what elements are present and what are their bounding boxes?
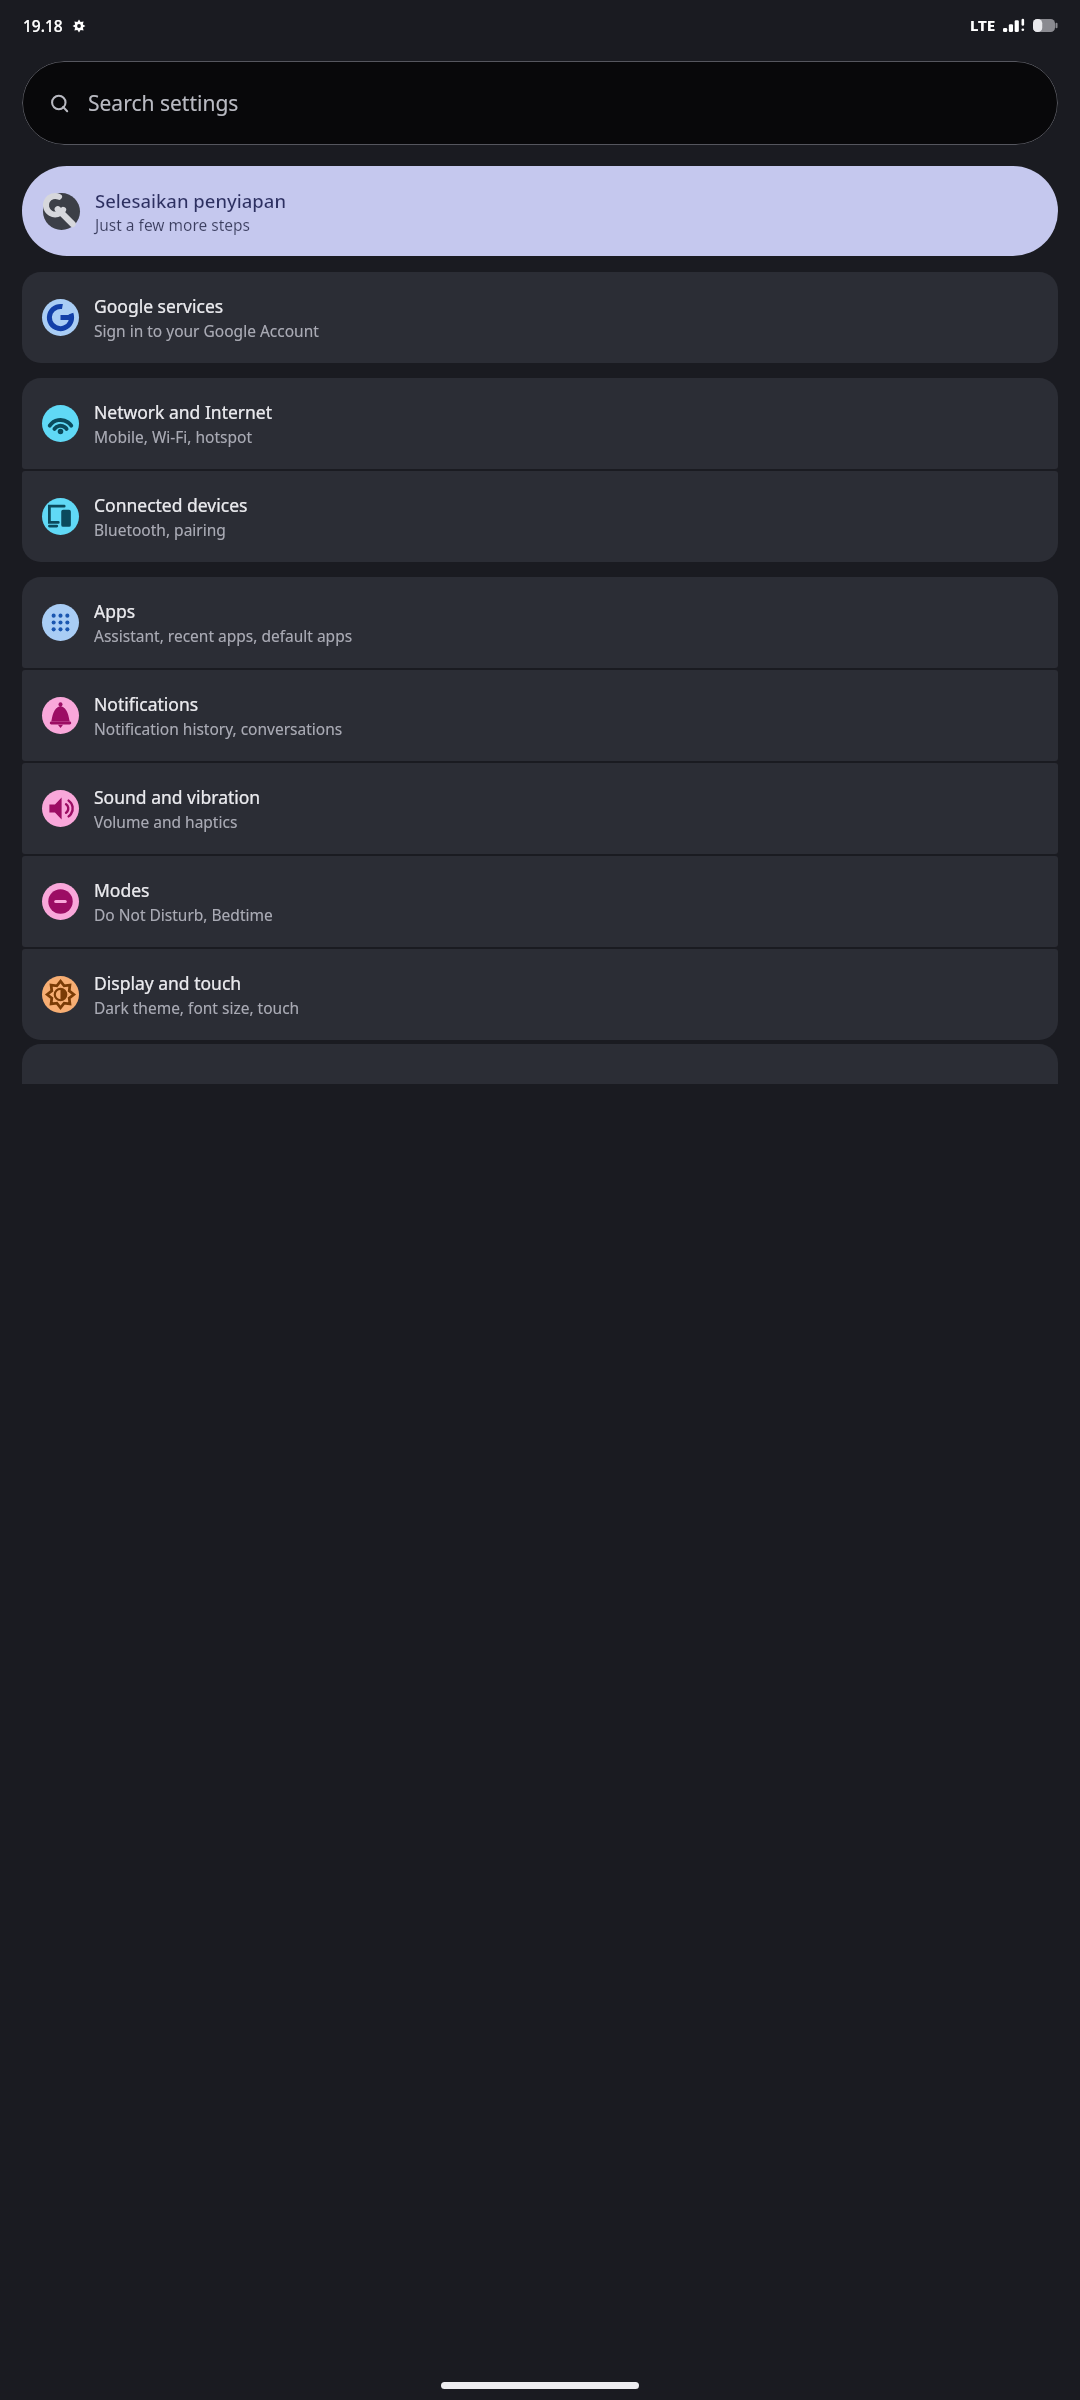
button[interactable]: Notifications xyxy=(22,670,1058,761)
button[interactable]: Display and touch xyxy=(22,949,1058,1040)
button[interactable]: Network and Internet xyxy=(22,378,1058,469)
button[interactable]: Connected devices xyxy=(22,471,1058,562)
staticText: Modes xyxy=(94,878,150,902)
staticText: Notifications xyxy=(94,692,199,716)
staticText: Bluetooth, pairing xyxy=(94,519,226,540)
staticText: Dark theme, font size, touch xyxy=(94,997,300,1018)
staticText: Sound and vibration xyxy=(94,785,261,809)
staticText: LTE xyxy=(970,15,996,35)
button[interactable]: Apps xyxy=(22,577,1058,668)
button[interactable]: Search settings xyxy=(22,61,1058,145)
button[interactable]: Modes xyxy=(22,856,1058,947)
staticText: Volume and haptics xyxy=(94,811,238,832)
staticText: Just a few more steps xyxy=(95,214,251,235)
other: Home xyxy=(441,2382,639,2389)
button[interactable]: Selesaikan penyiapan xyxy=(22,166,1058,256)
staticText: 19.18 xyxy=(23,15,63,36)
staticText: Search settings xyxy=(88,89,239,118)
staticText: Apps xyxy=(94,599,136,623)
staticText: Google services xyxy=(94,294,224,318)
staticText: Network and Internet xyxy=(94,400,273,424)
staticText: Sign in to your Google Account xyxy=(94,320,319,341)
staticText: Do Not Disturb, Bedtime xyxy=(94,904,273,925)
staticText: Mobile, Wi-Fi, hotspot xyxy=(94,426,253,447)
staticText: Assistant, recent apps, default apps xyxy=(94,625,353,646)
staticText: Notification history, conversations xyxy=(94,718,343,739)
staticText: Display and touch xyxy=(94,971,242,995)
button[interactable]: Sound and vibration xyxy=(22,763,1058,854)
staticText: Selesaikan penyiapan xyxy=(95,188,286,213)
staticText: Connected devices xyxy=(94,493,248,517)
button[interactable]: Google services xyxy=(22,272,1058,363)
